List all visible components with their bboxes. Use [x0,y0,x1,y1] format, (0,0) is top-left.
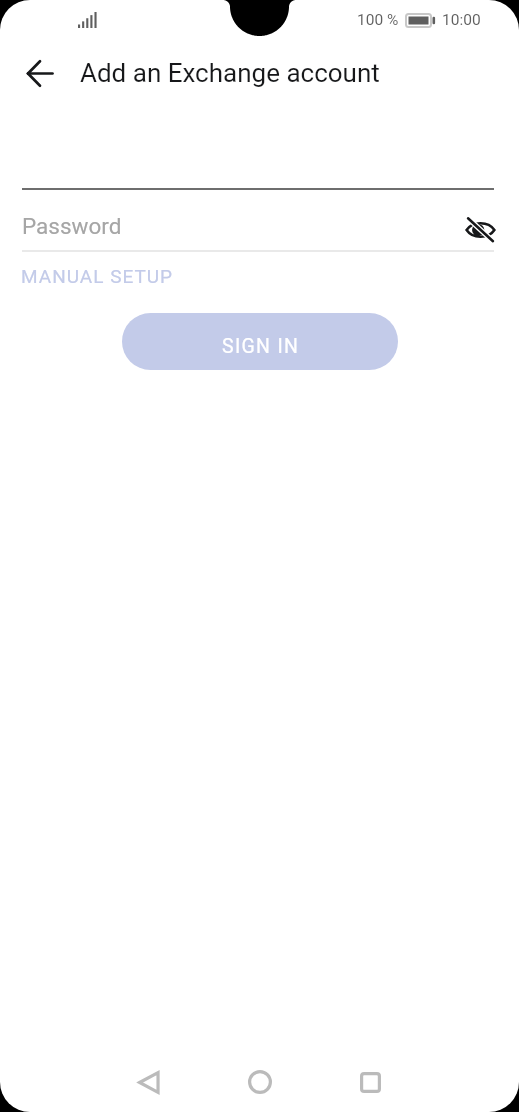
button[interactable]: Back [18,51,62,95]
button[interactable]: Home [230,1056,290,1108]
staticText: Password [22,213,122,239]
button[interactable]: Recents [340,1056,400,1108]
button[interactable]: Show password [462,211,498,247]
button[interactable]: Back [118,1056,178,1108]
staticText: MANUAL SETUP [21,265,174,287]
button[interactable]: MANUAL SETUP [21,265,174,287]
staticText: 10:00 [442,11,481,29]
staticText: SIGN IN [222,335,300,358]
button[interactable]: SIGN IN [122,313,398,370]
staticText: Add an Exchange account [80,58,380,88]
staticText: 100 % [357,11,399,29]
